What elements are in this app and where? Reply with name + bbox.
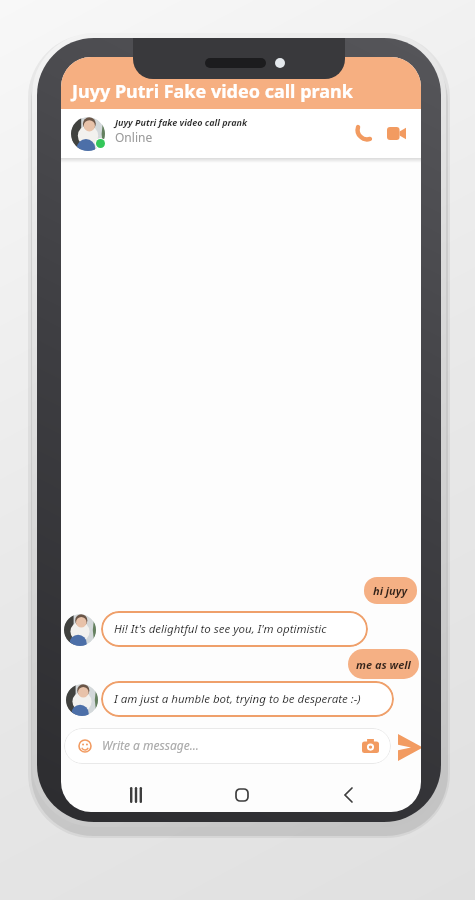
button[interactable] [344,787,353,803]
staticText: hi juyy [373,583,408,598]
button[interactable] [362,739,379,753]
button[interactable]: hi juyy [364,577,417,604]
staticText: Online [115,129,153,145]
button[interactable]: me as well [348,649,419,679]
staticText: I am just a humble bot, trying to be des… [114,691,361,707]
staticText: Juyy Putri Fake video call prank [72,79,353,104]
button[interactable] [387,127,406,140]
staticText: Hi! It's delightful to see you, I'm opti… [114,621,327,637]
button[interactable]: I am just a humble bot, trying to be des… [101,681,394,717]
button[interactable] [235,788,249,802]
button[interactable]: Write a message... [64,728,391,764]
button[interactable] [398,734,421,761]
button[interactable] [130,787,142,803]
staticText: me as well [356,657,411,672]
button[interactable] [355,125,372,142]
staticText: Write a message... [102,737,199,753]
staticText: Juyy Putri fake video call prank [115,116,248,128]
button[interactable]: Hi! It's delightful to see you, I'm opti… [101,611,368,647]
